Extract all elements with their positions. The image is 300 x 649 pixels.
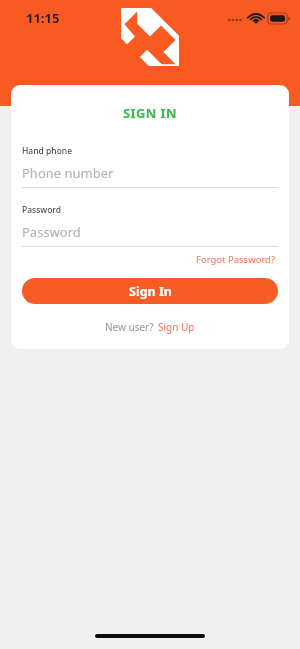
staticText: Phone number bbox=[22, 164, 114, 182]
button[interactable]: Hand phone bbox=[22, 145, 278, 188]
other: App logo bbox=[121, 8, 179, 66]
staticText: 11:15 bbox=[26, 9, 60, 27]
staticText: Sign In bbox=[129, 283, 172, 300]
button[interactable]: Forgot Password? bbox=[194, 251, 278, 268]
button[interactable]: Sign In bbox=[22, 278, 278, 304]
staticText: SIGN IN bbox=[22, 104, 278, 122]
staticText: Hand phone bbox=[22, 145, 73, 157]
button[interactable]: Password bbox=[22, 204, 278, 247]
staticText: Password bbox=[22, 223, 81, 241]
button[interactable]: Sign Up bbox=[157, 318, 196, 336]
staticText: New user? bbox=[105, 320, 157, 334]
staticText: Password bbox=[22, 204, 62, 216]
